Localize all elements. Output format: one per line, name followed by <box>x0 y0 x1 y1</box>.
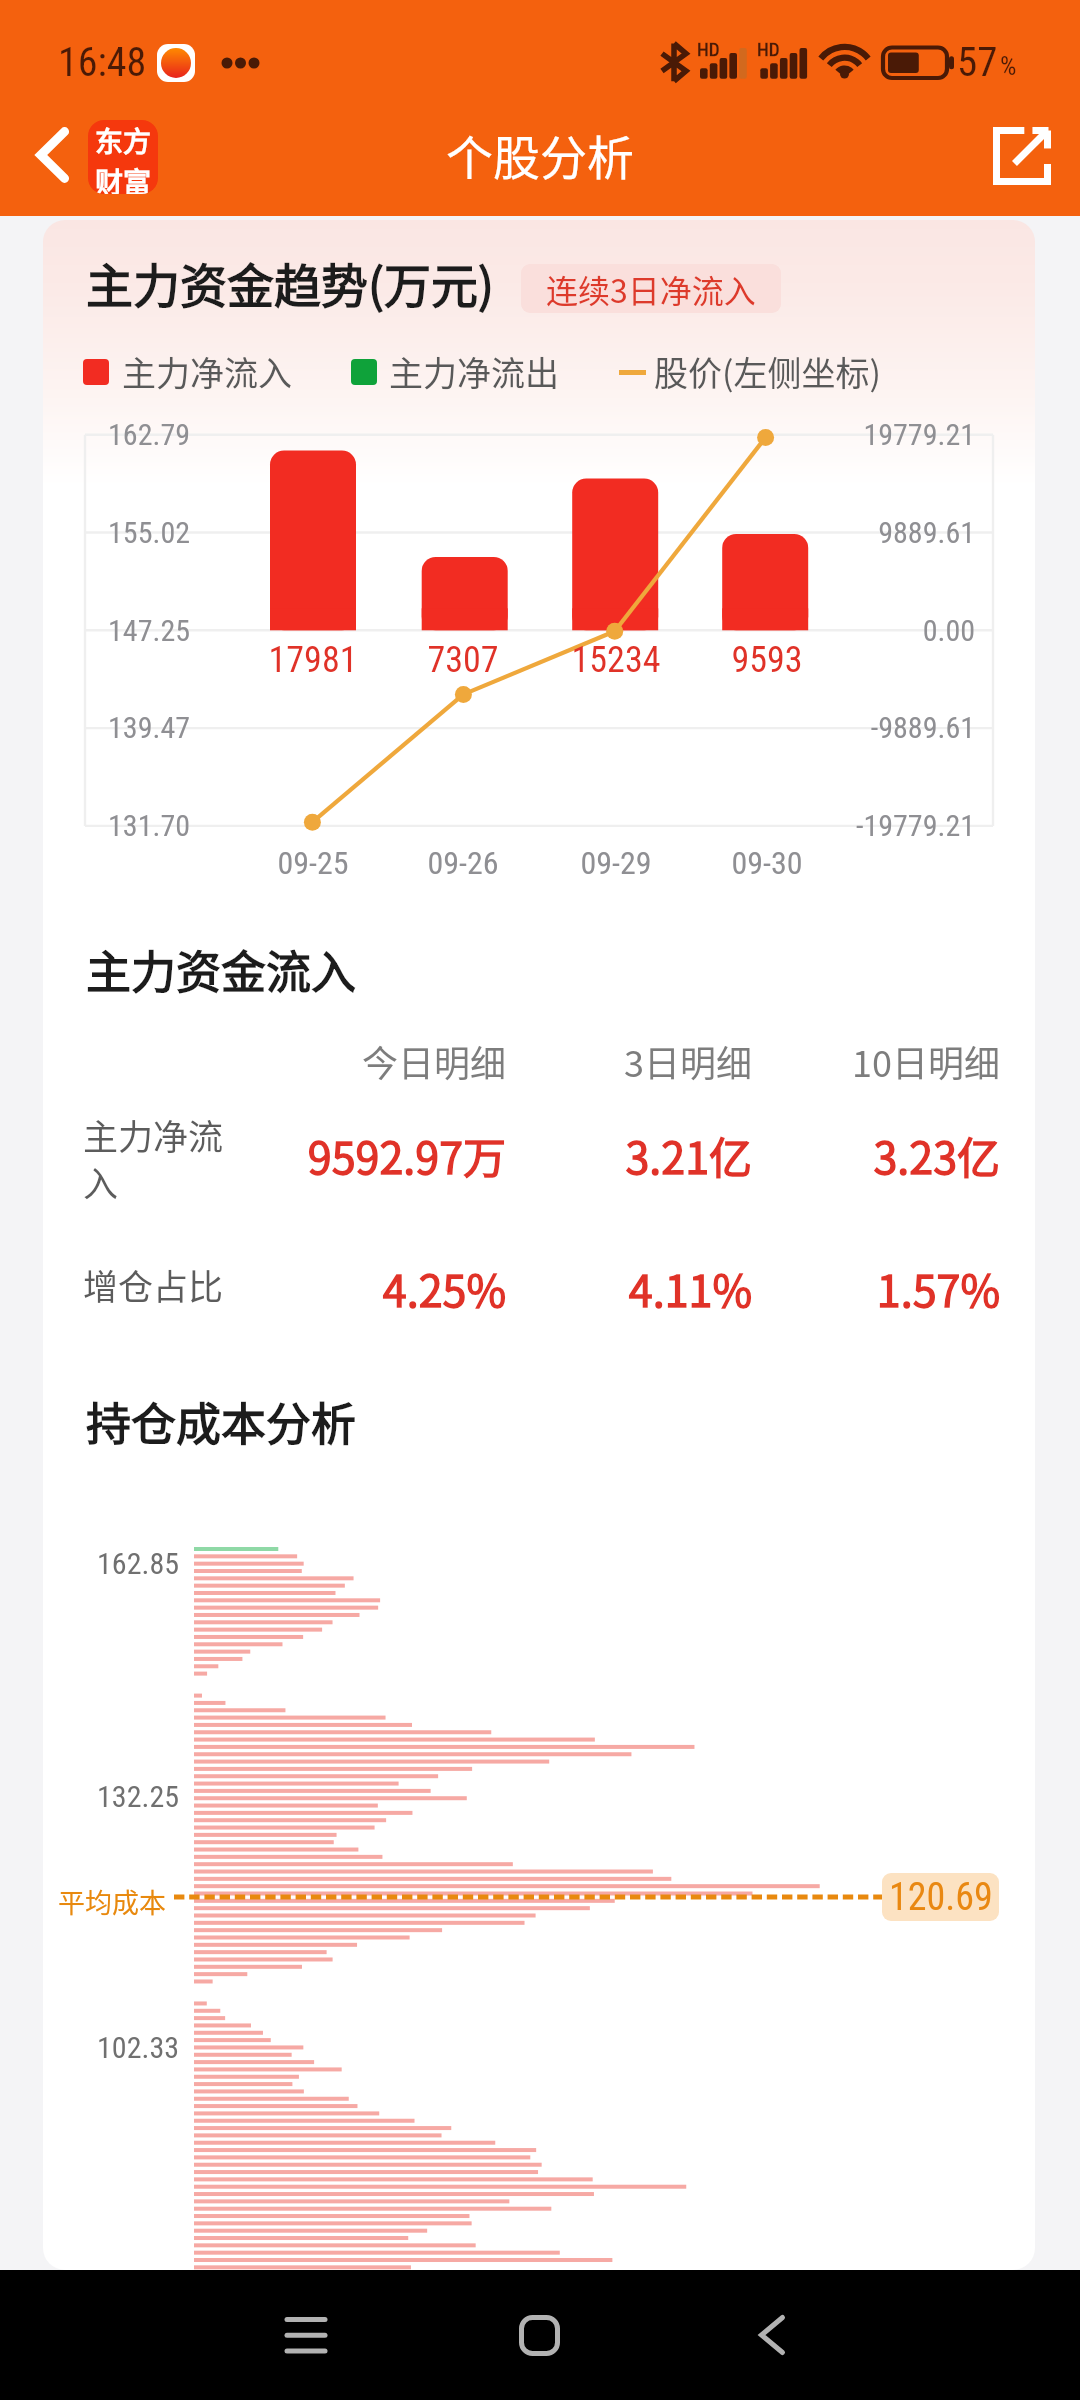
staticText: 持仓成本分析 <box>86 1389 357 1454</box>
staticText: 9592.97万 <box>186 1124 506 1186</box>
staticText: 9593 <box>687 639 847 681</box>
staticText: 19779.21 <box>785 417 975 452</box>
staticText: 9889.61 <box>785 515 975 550</box>
staticText: 3.21亿 <box>432 1124 752 1186</box>
staticText: 10日明细 <box>680 1035 1000 1087</box>
staticText: 57 <box>957 38 998 86</box>
staticText: 3日明细 <box>432 1035 752 1087</box>
staticText: 3.23亿 <box>680 1124 1000 1186</box>
staticText: 139.47 <box>50 710 190 745</box>
staticText: 162.79 <box>50 417 190 452</box>
staticText: 主力净流入 <box>122 347 292 396</box>
staticText: 102.33 <box>43 2030 179 2065</box>
staticText: 132.25 <box>43 1779 179 1814</box>
staticText: 东方 <box>95 120 152 161</box>
button[interactable]: Share <box>978 112 1066 200</box>
staticText: -19779.21 <box>785 808 975 843</box>
button[interactable]: Back <box>18 116 88 194</box>
staticText: 股价(左侧坐标) <box>654 347 881 396</box>
button[interactable]: Recent apps <box>226 2270 386 2400</box>
staticText: % <box>1000 51 1017 81</box>
staticText: -9889.61 <box>785 710 975 745</box>
staticText: 财富 <box>95 161 152 194</box>
staticText: 主力净流 入 <box>83 1109 248 1208</box>
staticText: HD <box>757 38 780 60</box>
staticText: 4.11% <box>432 1257 752 1319</box>
staticText: 162.85 <box>43 1546 179 1581</box>
staticText: HD <box>697 38 720 60</box>
staticText: 平均成本 <box>58 1882 166 1921</box>
staticText: 1.57% <box>680 1257 1000 1319</box>
staticText: 15234 <box>536 639 696 681</box>
button[interactable]: Home <box>459 2270 619 2400</box>
staticText: 17981 <box>233 639 393 681</box>
staticText: 连续3日净流入 <box>546 266 756 312</box>
staticText: 131.70 <box>50 808 190 843</box>
staticText: 147.25 <box>50 613 190 648</box>
staticText: 09-29 <box>536 844 696 882</box>
staticText: 09-26 <box>383 844 543 882</box>
staticText: 4.25% <box>186 1257 506 1319</box>
button[interactable]: Back <box>692 2270 852 2400</box>
staticText: 155.02 <box>50 515 190 550</box>
staticText: 7307 <box>383 639 543 681</box>
button[interactable]: East Money home <box>88 120 158 194</box>
staticText: 120.69 <box>889 1875 993 1920</box>
staticText: 主力资金趋势(万元) <box>86 248 494 316</box>
staticText: 主力净流出 <box>389 347 559 396</box>
staticText: 个股分析 <box>0 120 1080 188</box>
staticText: 09-25 <box>233 844 393 882</box>
staticText: 主力资金流入 <box>86 937 357 1002</box>
staticText: 增仓占比 <box>83 1259 283 1310</box>
staticText: 09-30 <box>687 844 847 882</box>
staticText: 16:48 <box>58 39 147 86</box>
staticText: 今日明细 <box>186 1035 506 1087</box>
staticText: 0.00 <box>785 613 975 648</box>
